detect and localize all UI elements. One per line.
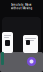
button[interactable]: App bbox=[27, 57, 36, 66]
staticText: Simulate Move bbox=[11, 3, 32, 6]
staticText: without Moving bbox=[10, 6, 32, 10]
